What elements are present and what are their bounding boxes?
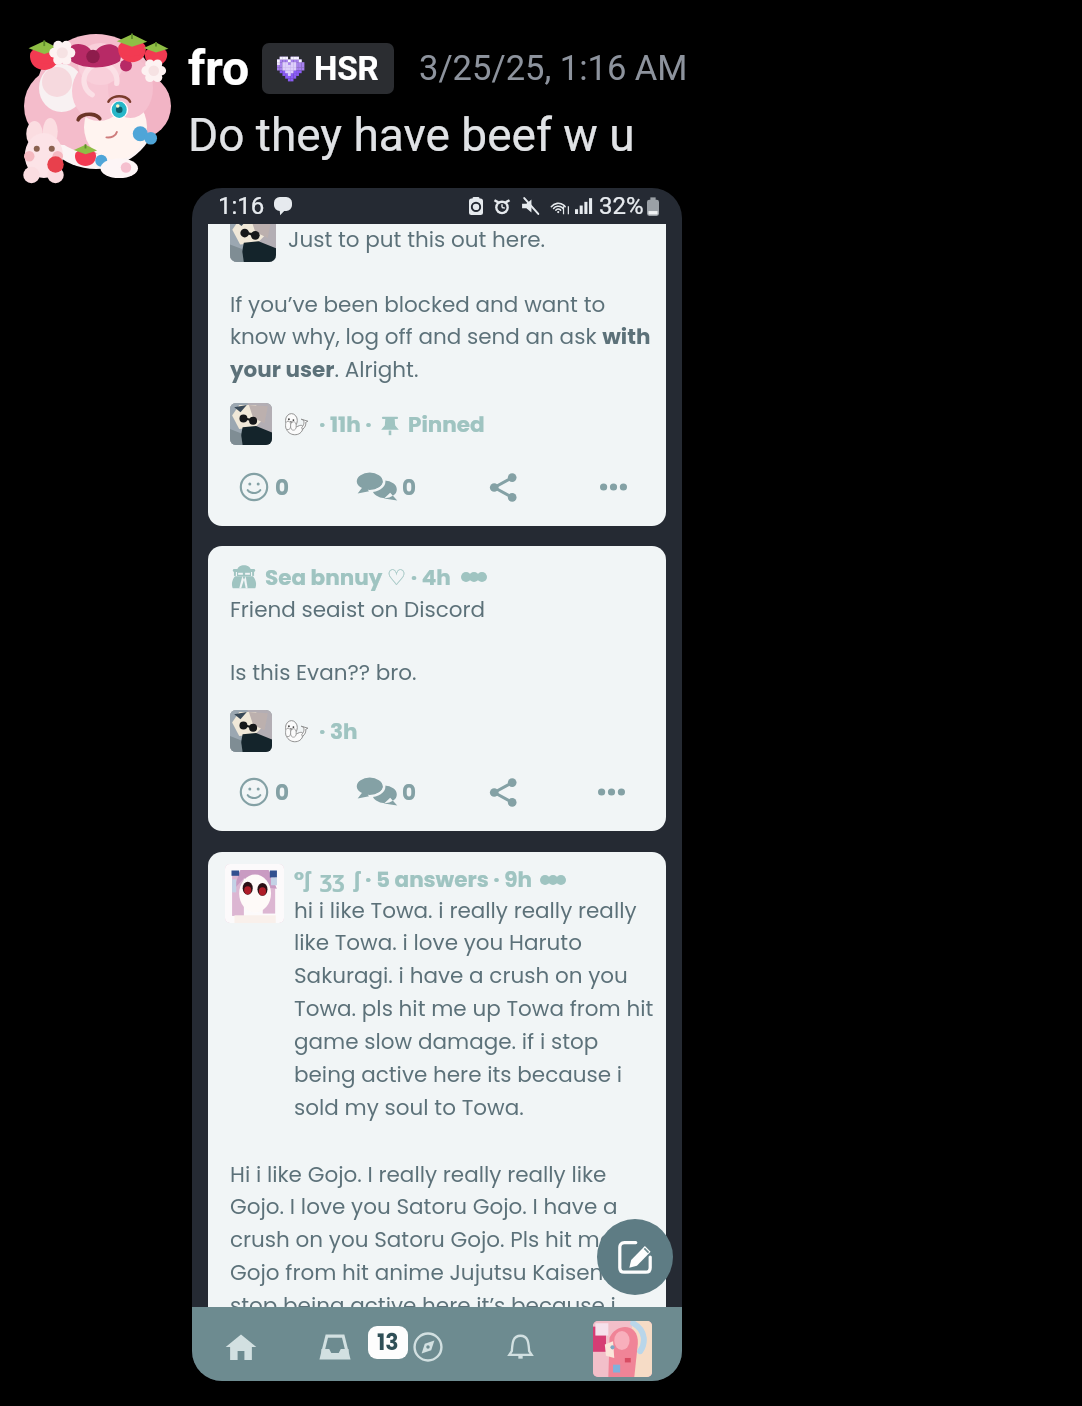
staticText: Friend seaist on Discord [230,594,486,624]
staticText: Do they have beef w u [188,108,635,162]
staticText: 13 [377,1327,399,1358]
button[interactable]: HSR [277,49,379,88]
button[interactable]: Home [207,1307,275,1381]
staticText: 32% [599,192,644,220]
staticText: °ʃ ʒʒ ʃ · 5 answers · 9h [294,864,532,895]
button[interactable]: 0 [239,465,355,509]
button[interactable]: Sea bnnuy ♡ · 4h [208,546,666,831]
button[interactable]: Share [488,465,604,509]
staticText: If you’ve been blocked and want to know … [230,289,655,384]
button[interactable]: More [604,465,655,509]
staticText: fro [188,40,250,96]
staticText: HSR [314,49,379,88]
button[interactable]: Inbox [301,1307,369,1381]
staticText: Sea bnnuy ♡ · 4h [265,562,451,592]
staticText: 0 [275,777,290,807]
button[interactable]: °ʃ ʒʒ ʃ · 5 answers · 9h [208,852,666,1307]
staticText: Hi i like Gojo. I really really really l… [230,1159,618,1307]
staticText: 0 [275,472,290,502]
staticText: 0 [402,472,417,502]
button[interactable]: Explore [394,1307,462,1381]
staticText: hi i like Towa. i really really really l… [294,895,654,1122]
button[interactable]: 0 [239,770,355,814]
staticText: 3/25/25, 1:16 AM [419,48,688,88]
staticText: 1:16 [218,192,265,220]
staticText: Is this Evan?? bro. [230,657,417,687]
staticText: Pinned [408,409,485,439]
button[interactable]: Share [488,770,604,814]
staticText: Just to put this out here. [288,224,546,254]
button[interactable]: Just to put this out here. [208,224,666,526]
staticText: 0 [402,777,417,807]
staticText: · 3h [319,716,358,746]
button[interactable]: Compose post [597,1219,673,1295]
staticText: · 11h · [319,409,372,439]
button[interactable]: 13 [377,1327,399,1358]
button[interactable]: More [604,770,650,814]
button[interactable]: 0 [355,465,488,509]
button[interactable]: 0 [355,770,488,814]
button[interactable]: Account [593,1321,652,1377]
button[interactable]: Activity [486,1307,554,1381]
